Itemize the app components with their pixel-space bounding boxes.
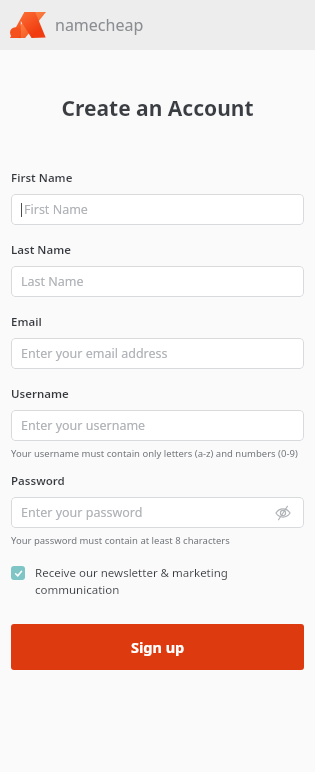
button[interactable]: Enter your password (11, 497, 304, 528)
button[interactable]: Last Name (11, 266, 304, 297)
staticText: Your username must contain only letters … (11, 447, 304, 460)
button[interactable]: Enter your username (11, 410, 304, 441)
staticText: Enter your password (21, 504, 143, 521)
staticText: Password (11, 473, 65, 489)
staticText: Last Name (21, 273, 84, 290)
staticText: Sign up (131, 637, 185, 657)
staticText: Username (11, 386, 69, 402)
staticText: Enter your email address (21, 345, 168, 362)
staticText: First Name (24, 201, 88, 218)
staticText: namecheap (55, 14, 144, 36)
button[interactable]: First Name (11, 194, 304, 225)
button[interactable]: Enter your email address (11, 338, 304, 369)
staticText: Enter your username (21, 417, 146, 434)
staticText: Receive our newsletter & marketing commu… (35, 565, 304, 598)
button[interactable]: Show password (272, 502, 294, 524)
staticText: First Name (11, 170, 73, 186)
button[interactable]: Receive our newsletter & marketing commu… (11, 565, 304, 598)
staticText: Create an Account (11, 94, 304, 123)
button[interactable]: Sign up (11, 624, 304, 670)
staticText: Last Name (11, 242, 71, 258)
staticText: Email (11, 314, 42, 330)
staticText: Your password must contain at least 8 ch… (11, 534, 230, 547)
